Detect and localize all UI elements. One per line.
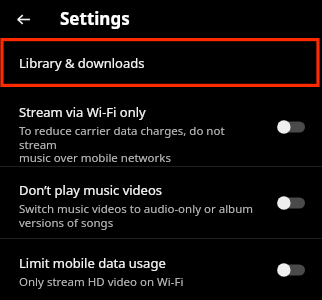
button[interactable]: Library & downloads	[0, 38, 322, 87]
button[interactable]: Limit mobile data usage toggle	[274, 258, 308, 282]
staticText: Settings	[60, 7, 130, 30]
button[interactable]: Stream via Wi-Fi only toggle	[274, 115, 308, 139]
staticText: Only stream HD video on Wi-Fi	[19, 274, 184, 290]
button[interactable]: Don’t play music videos	[0, 167, 322, 238]
button[interactable]: Back	[9, 5, 37, 33]
staticText: To reduce carrier data charges, do not s…	[19, 123, 262, 165]
staticText: Switch music videos to audio-only or alb…	[19, 201, 254, 230]
staticText: Library & downloads	[19, 54, 145, 72]
button[interactable]: Don’t play music videos toggle	[274, 191, 308, 215]
staticText: Stream via Wi-Fi only	[19, 103, 146, 121]
button[interactable]: Limit mobile data usage	[0, 239, 322, 300]
button[interactable]: Stream via Wi-Fi only	[0, 87, 322, 166]
staticText: Don’t play music videos	[19, 181, 163, 199]
staticText: Limit mobile data usage	[19, 254, 166, 272]
